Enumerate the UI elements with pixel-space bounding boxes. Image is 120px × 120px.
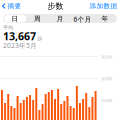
staticText: 日 bbox=[11, 15, 18, 22]
staticText: 步数 bbox=[47, 1, 63, 11]
staticText: 摘要 bbox=[7, 2, 21, 10]
staticText: 20,000 bbox=[101, 76, 112, 81]
staticText: 平均 bbox=[3, 24, 13, 31]
button[interactable]: 日 bbox=[4, 15, 26, 22]
staticText: 13,667 bbox=[3, 29, 36, 43]
staticText: 周 bbox=[34, 15, 41, 22]
button[interactable]: 6个月 bbox=[71, 15, 94, 22]
button[interactable]: 年 bbox=[94, 15, 116, 22]
button[interactable]: 月 bbox=[49, 15, 71, 22]
button[interactable]: 摘要 bbox=[0, 0, 21, 12]
staticText: 月 bbox=[56, 15, 63, 22]
staticText: 年 bbox=[101, 15, 108, 22]
staticText: 30,000 bbox=[101, 54, 112, 60]
staticText: 添加数据 bbox=[89, 2, 117, 10]
staticText: 10,000 bbox=[101, 98, 112, 103]
button[interactable]: 周 bbox=[26, 15, 49, 22]
staticText: 2023年5月 bbox=[3, 41, 37, 50]
staticText: 6个月 bbox=[73, 15, 91, 22]
staticText: 步 bbox=[37, 35, 42, 42]
button[interactable]: 添加数据 bbox=[89, 0, 120, 12]
